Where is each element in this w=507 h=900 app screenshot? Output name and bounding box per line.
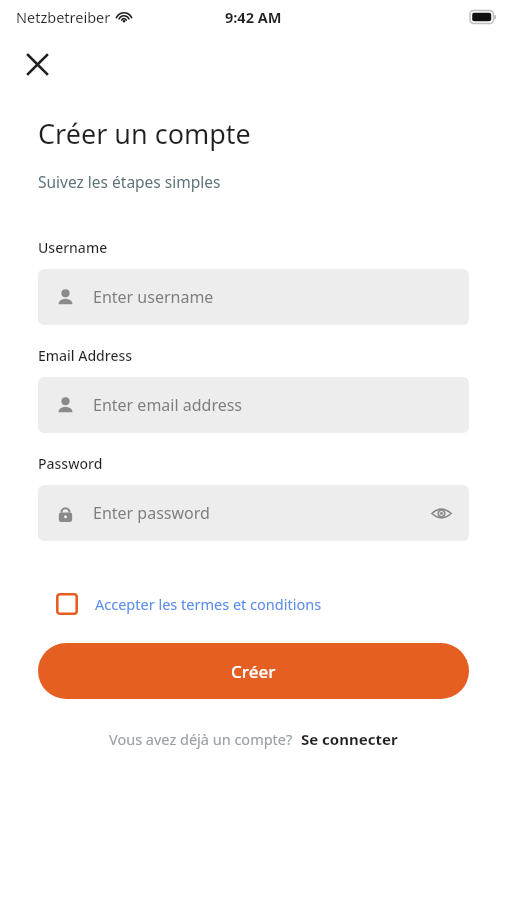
staticText: Password bbox=[38, 454, 103, 473]
staticText: Vous avez déjà un compte? bbox=[109, 729, 293, 749]
staticText: Créer bbox=[231, 660, 276, 683]
staticText: Se connecter bbox=[301, 729, 398, 749]
button[interactable]: Close bbox=[14, 41, 60, 87]
button[interactable]: Accepter les termes et conditions bbox=[38, 587, 322, 621]
staticText: Netzbetreiber bbox=[16, 7, 111, 27]
staticText: Créer un compte bbox=[38, 115, 251, 152]
button[interactable]: Enter username bbox=[38, 269, 469, 325]
staticText: Enter username bbox=[93, 286, 455, 308]
staticText: Username bbox=[38, 238, 108, 257]
button[interactable]: Enter email address bbox=[38, 377, 469, 433]
staticText: Email Address bbox=[38, 346, 133, 365]
staticText: Enter password bbox=[93, 502, 419, 524]
button[interactable]: Enter password bbox=[38, 485, 469, 541]
button[interactable]: Show password bbox=[419, 491, 463, 535]
staticText: 9:42 AM bbox=[225, 7, 282, 27]
staticText: Enter email address bbox=[93, 394, 455, 416]
staticText: Suivez les étapes simples bbox=[38, 171, 221, 192]
button[interactable]: Créer bbox=[38, 643, 469, 699]
button[interactable]: Vous avez déjà un compte? bbox=[38, 725, 469, 753]
staticText: Accepter les termes et conditions bbox=[95, 594, 322, 614]
